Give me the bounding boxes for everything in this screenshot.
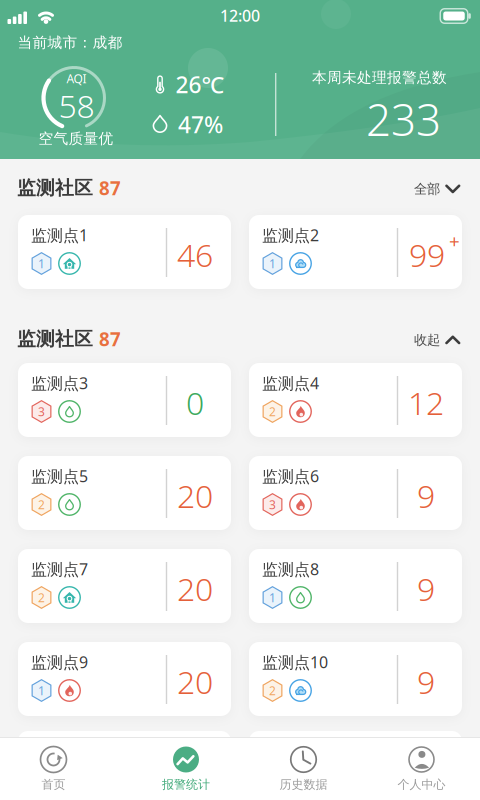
staticText: 监测点1: [31, 224, 88, 246]
staticText: 当前城市：成都: [17, 33, 122, 51]
button[interactable]: 个人中心: [366, 738, 476, 800]
button[interactable]: 报警统计: [131, 738, 241, 800]
button[interactable]: 监测点1: [18, 215, 231, 289]
button[interactable]: 监测点7: [18, 549, 231, 623]
staticText: 监测点7: [31, 558, 88, 580]
staticText: 监测社区: [17, 327, 93, 350]
staticText: 监测点10: [262, 651, 328, 673]
staticText: 个人中心: [397, 777, 445, 792]
button[interactable]: 监测点6: [249, 456, 462, 530]
staticText: 本周未处理报警总数: [312, 68, 447, 86]
staticText: 历史数据: [279, 777, 327, 792]
staticText: 12:00: [220, 5, 260, 26]
staticText: 20: [177, 567, 213, 610]
staticText: 12: [408, 381, 444, 424]
button[interactable]: 首页: [0, 738, 108, 800]
button[interactable]: 监测点10: [249, 642, 462, 716]
staticText: AQI: [66, 70, 86, 86]
staticText: 58: [58, 84, 94, 127]
staticText: 监测点4: [262, 372, 319, 394]
staticText: +: [449, 229, 460, 253]
staticText: 报警统计: [162, 777, 210, 792]
button[interactable]: 监测点5: [18, 456, 231, 530]
staticText: 2: [38, 589, 45, 605]
staticText: 监测点9: [31, 651, 88, 673]
staticText: 47%: [178, 109, 223, 139]
staticText: 1: [38, 682, 45, 698]
staticText: 1: [269, 255, 276, 271]
staticText: 87: [99, 176, 121, 200]
staticText: 1: [269, 589, 276, 605]
staticText: 2: [38, 496, 45, 512]
button[interactable]: 历史数据: [248, 738, 358, 800]
staticText: 1: [38, 255, 45, 271]
staticText: 全部: [414, 181, 440, 197]
button[interactable]: 监测点8: [249, 549, 462, 623]
staticText: 87: [99, 327, 121, 351]
staticText: 监测社区: [17, 176, 93, 199]
staticText: 46: [177, 233, 213, 276]
staticText: 2: [269, 403, 276, 419]
staticText: 2: [269, 682, 276, 698]
staticText: 9: [417, 567, 435, 610]
button[interactable]: 监测点4: [249, 363, 462, 437]
button[interactable]: 监测点2: [249, 215, 462, 289]
staticText: 99: [409, 233, 445, 276]
staticText: 233: [366, 90, 441, 148]
staticText: 监测点3: [31, 372, 88, 394]
staticText: 20: [177, 474, 213, 517]
button[interactable]: 监测点3: [18, 363, 231, 437]
staticText: 收起: [414, 332, 440, 348]
button[interactable]: 全部: [406, 175, 468, 203]
staticText: 26℃: [175, 69, 224, 99]
staticText: 监测点2: [262, 224, 319, 246]
staticText: 监测点6: [262, 465, 319, 487]
staticText: 空气质量优: [38, 129, 113, 147]
button[interactable]: 收起: [406, 326, 468, 354]
button[interactable]: 当前城市：成都: [17, 30, 122, 54]
button[interactable]: 监测点9: [18, 642, 231, 716]
staticText: 3: [269, 496, 276, 512]
staticText: 监测点5: [31, 465, 88, 487]
staticText: 9: [417, 660, 435, 703]
staticText: 首页: [41, 777, 65, 792]
staticText: 3: [38, 403, 45, 419]
staticText: 20: [177, 660, 213, 703]
staticText: 9: [417, 474, 435, 517]
staticText: 0: [186, 381, 204, 424]
staticText: 监测点8: [262, 558, 319, 580]
